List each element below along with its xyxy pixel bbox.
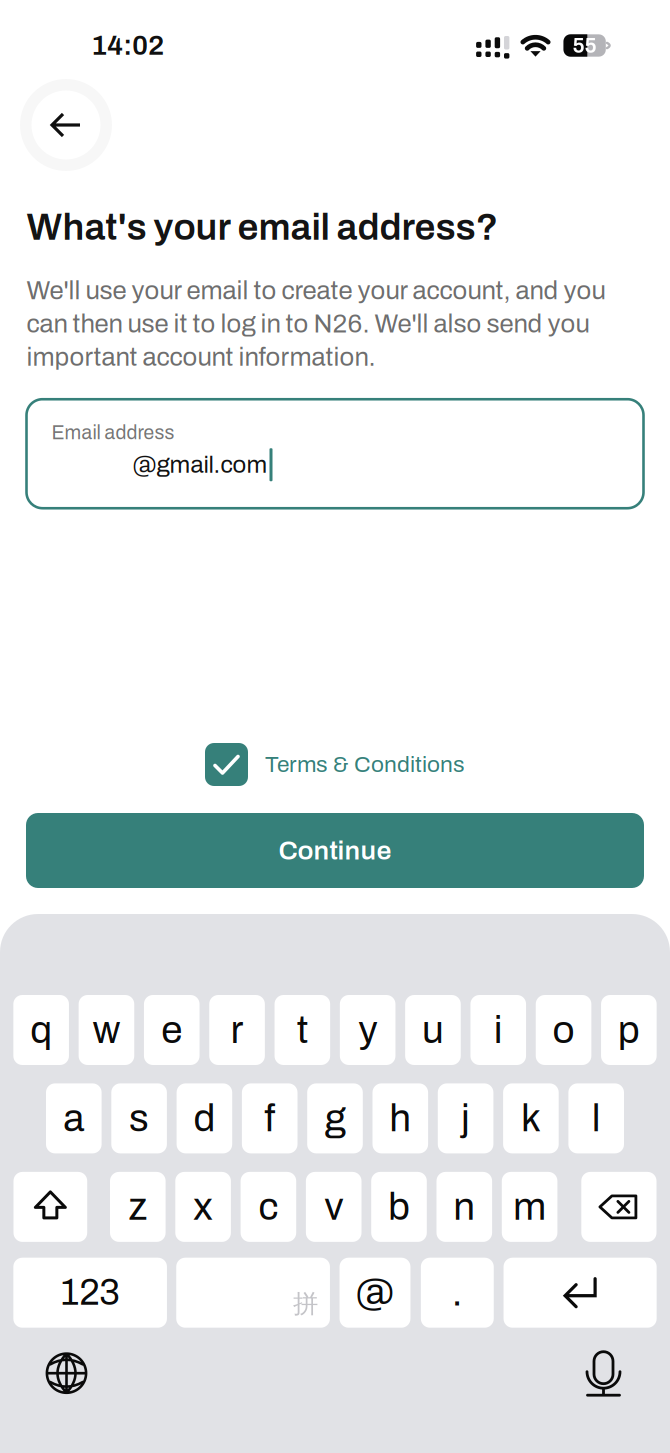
staticText: @gmail.com (132, 452, 267, 478)
staticText: 123 (60, 1273, 120, 1312)
staticText: t (297, 1009, 308, 1051)
button[interactable]: d (177, 1083, 232, 1153)
button[interactable]: Delete (581, 1172, 656, 1242)
staticText: 14:02 (91, 30, 164, 61)
staticText: z (128, 1186, 147, 1228)
staticText: Terms & Conditions (265, 752, 465, 777)
staticText: h (389, 1097, 411, 1139)
button[interactable]: Terms & Conditions (205, 743, 465, 786)
staticText: Email address (51, 422, 174, 443)
staticText: l (592, 1097, 601, 1139)
button[interactable]: b (371, 1172, 427, 1242)
button[interactable]: . (421, 1258, 494, 1328)
staticText: j (461, 1097, 470, 1139)
button[interactable]: f (242, 1083, 297, 1153)
button[interactable]: y (340, 995, 395, 1065)
button[interactable]: k (503, 1083, 559, 1153)
button[interactable]: n (436, 1172, 492, 1242)
staticText: q (30, 1009, 52, 1051)
button[interactable]: x (175, 1172, 231, 1242)
button[interactable]: o (536, 995, 591, 1065)
staticText: 拼 (293, 1288, 318, 1320)
button[interactable]: c (241, 1172, 296, 1242)
button[interactable]: r (209, 995, 265, 1065)
staticText: w (92, 1009, 120, 1051)
button[interactable]: Dictate (582, 1351, 624, 1396)
staticText: x (193, 1186, 213, 1228)
button[interactable]: Back (20, 79, 112, 171)
staticText: v (324, 1186, 343, 1228)
staticText: 55 (572, 34, 596, 57)
staticText: f (264, 1097, 275, 1139)
staticText: m (513, 1186, 546, 1228)
staticText: a (63, 1097, 84, 1139)
staticText: What's your email address? (26, 207, 498, 248)
button[interactable]: g (307, 1083, 363, 1153)
staticText: i (494, 1009, 503, 1051)
button[interactable]: j (438, 1083, 493, 1153)
button[interactable]: v (306, 1172, 361, 1242)
button[interactable]: p (601, 995, 657, 1065)
staticText: @ (355, 1272, 394, 1314)
button[interactable]: 123 (13, 1258, 167, 1328)
staticText: . (452, 1272, 463, 1314)
button[interactable]: l (568, 1083, 624, 1153)
button[interactable]: Switch keyboard (45, 1352, 87, 1394)
staticText: n (453, 1186, 475, 1228)
staticText: g (324, 1097, 345, 1139)
button[interactable]: s (111, 1083, 167, 1153)
staticText: c (258, 1186, 278, 1228)
button[interactable]: Continue (26, 813, 644, 888)
button[interactable]: a (46, 1083, 102, 1153)
button[interactable]: t (274, 995, 330, 1065)
staticText: y (358, 1009, 377, 1051)
staticText: b (388, 1186, 410, 1228)
staticText: Continue (278, 836, 391, 865)
staticText: p (618, 1009, 640, 1051)
button[interactable]: e (144, 995, 199, 1065)
button[interactable]: i (470, 995, 526, 1065)
button[interactable]: z (110, 1172, 166, 1242)
button[interactable]: u (405, 995, 461, 1065)
staticText: e (161, 1009, 182, 1051)
staticText: u (422, 1009, 444, 1051)
button[interactable]: Shift (13, 1172, 87, 1242)
staticText: k (521, 1097, 541, 1139)
button[interactable]: h (372, 1083, 428, 1153)
button[interactable]: q (13, 995, 69, 1065)
staticText: We'll use your email to create your acco… (26, 277, 605, 371)
button[interactable]: m (502, 1172, 557, 1242)
staticText: o (552, 1009, 574, 1051)
button[interactable]: Return (504, 1258, 657, 1328)
staticText: s (129, 1097, 149, 1139)
button[interactable]: Space (176, 1258, 330, 1328)
button[interactable]: w (79, 995, 134, 1065)
staticText: d (193, 1097, 215, 1139)
button[interactable]: @ (340, 1258, 410, 1328)
staticText: r (230, 1009, 243, 1051)
